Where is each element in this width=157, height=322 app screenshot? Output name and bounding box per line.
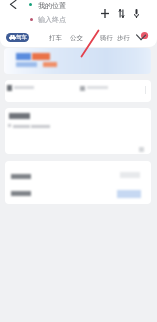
staticText: 步行: [117, 34, 130, 42]
button[interactable]: 我的位置: [26, 0, 92, 24]
button[interactable]: 骑行: [97, 32, 116, 43]
staticText: 打车: [49, 34, 62, 42]
staticText: 骑行: [100, 34, 113, 42]
button[interactable]: [5, 80, 151, 102]
staticText: 输入终点: [38, 15, 66, 24]
staticText: 公交: [70, 34, 83, 42]
button[interactable]: Voice input: [129, 6, 144, 21]
button[interactable]: [5, 108, 151, 154]
button[interactable]: [4, 48, 151, 74]
button[interactable]: 步行: [114, 32, 133, 43]
button[interactable]: [5, 161, 151, 182]
staticText: 驾车: [16, 34, 27, 41]
button[interactable]: Swap start and destination: [114, 6, 129, 21]
button[interactable]: [5, 182, 151, 204]
button[interactable]: 打车: [46, 32, 65, 43]
button[interactable]: 驾车: [6, 33, 29, 42]
button[interactable]: Back: [3, 0, 21, 16]
staticText: 我的位置: [38, 1, 66, 10]
button[interactable]: Add waypoint: [97, 6, 112, 21]
button[interactable]: 公交: [67, 32, 86, 43]
